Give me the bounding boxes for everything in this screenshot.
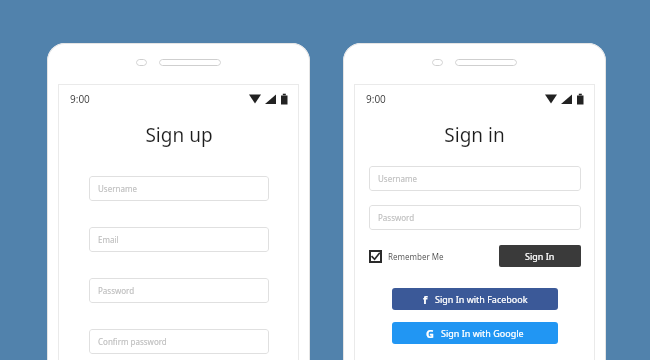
- button[interactable]: Remember Me: [369, 250, 444, 263]
- staticText: Sign In with Facebook: [435, 293, 528, 305]
- staticText: Sign in: [444, 122, 505, 148]
- staticText: Username: [98, 183, 137, 194]
- button[interactable]: Confirm password: [89, 329, 269, 354]
- staticText: f: [423, 292, 428, 307]
- button[interactable]: Username: [89, 176, 269, 201]
- staticText: Sign In: [525, 250, 555, 262]
- staticText: G: [426, 326, 434, 341]
- button[interactable]: Password: [89, 278, 269, 303]
- staticText: 9:00: [70, 92, 90, 106]
- staticText: Sign up: [145, 122, 213, 148]
- button[interactable]: Username: [369, 166, 581, 191]
- staticText: 9:00: [366, 92, 386, 106]
- button[interactable]: Email: [89, 227, 269, 252]
- staticText: Confirm password: [98, 336, 167, 347]
- staticText: Password: [378, 212, 415, 223]
- staticText: Remember Me: [388, 251, 444, 262]
- button[interactable]: Password: [369, 205, 581, 230]
- staticText: Email: [98, 234, 119, 245]
- button[interactable]: Sign In: [499, 245, 581, 267]
- staticText: Username: [378, 173, 417, 184]
- button[interactable]: G: [392, 322, 558, 344]
- button[interactable]: f: [392, 288, 558, 310]
- staticText: Sign In with Google: [441, 327, 524, 339]
- staticText: Password: [98, 285, 135, 296]
